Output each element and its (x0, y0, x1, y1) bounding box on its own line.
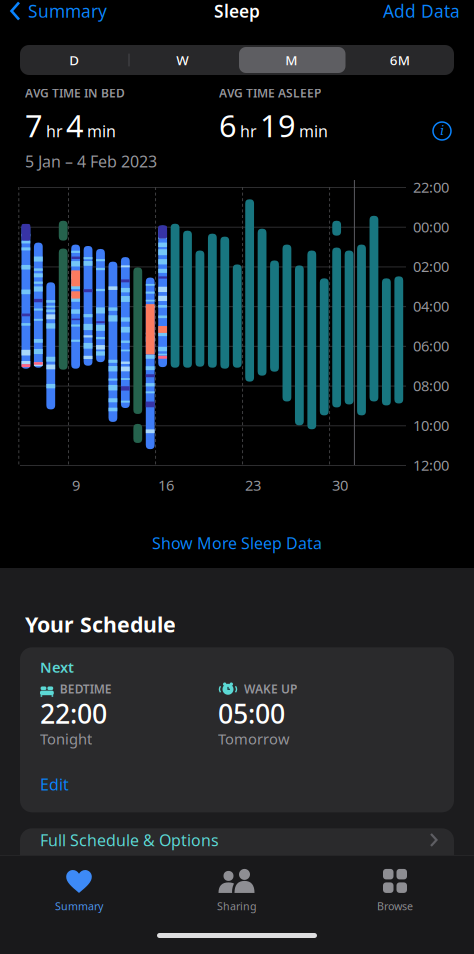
staticText: 12:00 (413, 455, 449, 475)
staticText: BEDTIME (60, 681, 112, 697)
staticText: M (285, 51, 297, 69)
staticText: hr (240, 120, 257, 142)
button[interactable]: Show More Sleep Data (142, 524, 332, 562)
staticText: Tomorrow (218, 729, 290, 749)
button[interactable]: Edit (40, 770, 69, 799)
staticText: 22:00 (413, 177, 449, 197)
staticText: 6 (219, 105, 237, 146)
staticText: Add Data (383, 0, 460, 22)
staticText: 06:00 (413, 336, 449, 356)
staticText: 4 (66, 105, 84, 146)
button[interactable]: Summary (0, 0, 107, 22)
button[interactable]: Full Schedule & Options (20, 828, 454, 954)
button[interactable]: Add Data (383, 0, 474, 22)
staticText: Edit (40, 774, 69, 795)
staticText: 05:00 (218, 696, 285, 731)
button[interactable]: Browse (316, 862, 474, 920)
staticText: D (69, 51, 79, 69)
staticText: 23 (245, 475, 261, 495)
staticText: Full Schedule & Options (40, 829, 219, 850)
staticText: 08:00 (413, 376, 449, 395)
staticText: 10:00 (413, 415, 449, 435)
staticText: WAKE UP (244, 681, 297, 697)
staticText: AVG TIME IN BED (25, 85, 125, 101)
staticText: W (176, 51, 189, 69)
staticText: Summary (28, 0, 107, 22)
staticText: Sleep (214, 0, 260, 22)
staticText: min (299, 120, 328, 142)
staticText: 00:00 (413, 217, 449, 236)
staticText: Sharing (217, 899, 257, 913)
staticText: Tonight (40, 729, 92, 749)
staticText: i (440, 123, 444, 138)
button[interactable]: D (20, 45, 128, 75)
button[interactable]: M (237, 45, 345, 75)
staticText: 9 (72, 475, 80, 495)
staticText: Summary (55, 899, 103, 913)
staticText: 7 (25, 105, 43, 146)
staticText: 19 (260, 105, 296, 146)
staticText: min (87, 120, 116, 142)
staticText: 04:00 (413, 296, 449, 316)
staticText: Show More Sleep Data (152, 532, 322, 554)
staticText: Your Schedule (25, 610, 176, 638)
staticText: 16 (158, 475, 174, 495)
staticText: hr (46, 120, 63, 142)
staticText: 5 Jan – 4 Feb 2023 (25, 151, 157, 172)
button[interactable]: Sharing (158, 862, 316, 920)
staticText: Next (40, 657, 74, 677)
staticText: 30 (332, 475, 348, 495)
staticText: 22:00 (40, 696, 107, 731)
staticText: Browse (377, 899, 413, 913)
button[interactable]: More information (427, 116, 457, 146)
staticText: AVG TIME ASLEEP (219, 85, 321, 101)
button[interactable]: 6M (345, 45, 454, 75)
button[interactable]: Summary (0, 862, 158, 920)
button[interactable]: W (128, 45, 237, 75)
staticText: 02:00 (413, 257, 449, 276)
staticText: 6M (390, 51, 410, 69)
